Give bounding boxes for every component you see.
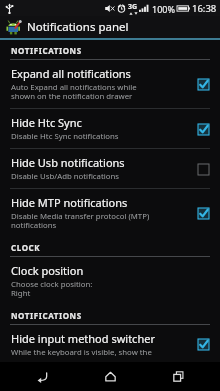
button[interactable]: Clock position xyxy=(0,257,220,305)
staticText: Disable Media transfer protocol (MTP) no… xyxy=(11,211,150,231)
staticText: Hide MTP notifications xyxy=(11,195,128,210)
staticText: CLOCK xyxy=(11,242,41,253)
staticText: NOTIFICATIONS xyxy=(11,45,82,56)
staticText: Hide Usb notifications xyxy=(11,155,125,170)
button[interactable]: Back xyxy=(16,362,68,391)
button[interactable]: Hide input method switcher xyxy=(0,325,220,362)
staticText: Disable Htc Sync notifications xyxy=(11,131,119,142)
button[interactable]: Checked xyxy=(196,337,210,351)
staticText: Notifications panel xyxy=(27,19,129,35)
staticText: 100% xyxy=(152,3,175,15)
staticText: Expand all notifications xyxy=(11,66,131,81)
button[interactable]: Notifications panel xyxy=(0,16,220,38)
button[interactable]: Checked xyxy=(196,77,210,91)
staticText: 16:38 xyxy=(192,2,217,15)
staticText: While the keyboard is visible, show the … xyxy=(11,347,152,356)
staticText: NOTIFICATIONS xyxy=(11,310,82,321)
button[interactable]: Hide Htc Sync xyxy=(0,109,220,148)
staticText: Choose clock position: Right xyxy=(11,279,93,299)
button[interactable]: Checked xyxy=(196,122,210,136)
staticText: Auto Expand all notifications while show… xyxy=(11,82,137,102)
staticText: Hide Htc Sync xyxy=(11,115,82,130)
button[interactable]: Expand all notifications xyxy=(0,60,220,108)
staticText: Clock position xyxy=(11,263,84,278)
button[interactable]: Hide MTP notifications xyxy=(0,189,220,237)
staticText: Disable Usb/Adb notifications xyxy=(11,171,120,182)
button[interactable]: Checked xyxy=(196,206,210,220)
button[interactable]: Recent apps xyxy=(152,362,204,391)
staticText: 3G xyxy=(128,2,138,12)
button[interactable]: Home xyxy=(84,362,136,391)
staticText: Hide input method switcher xyxy=(11,331,155,346)
button[interactable]: Unchecked xyxy=(196,162,210,176)
button[interactable]: Hide Usb notifications xyxy=(0,149,220,188)
